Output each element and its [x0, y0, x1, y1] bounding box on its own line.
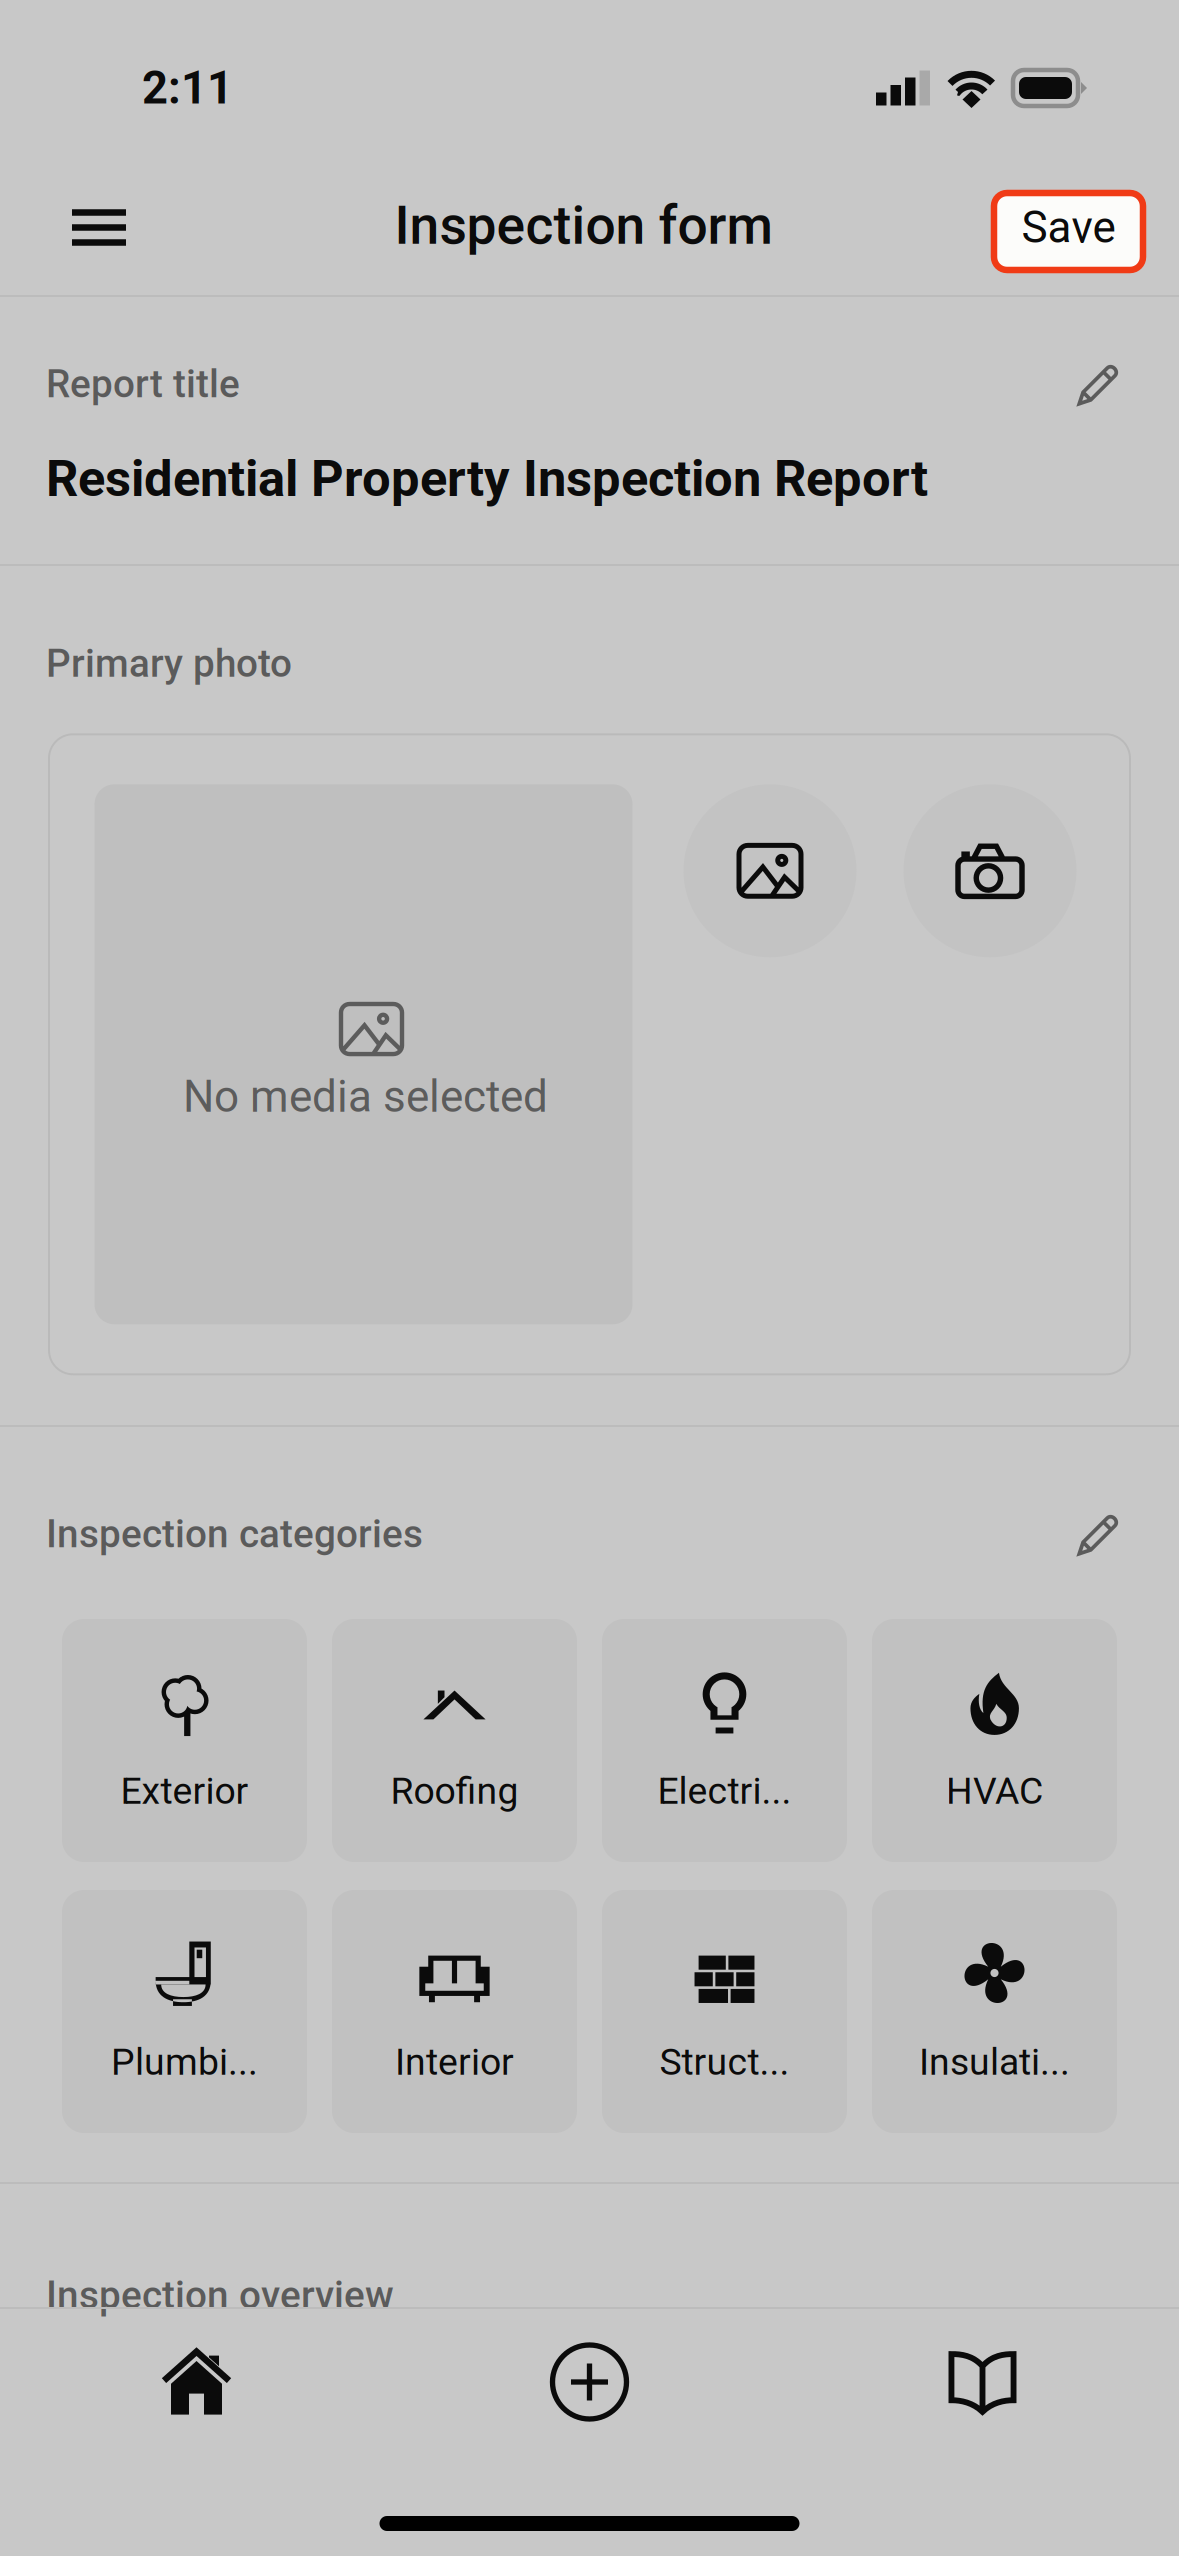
- staticText: Inspection categories: [46, 1511, 423, 1557]
- button[interactable]: Menu: [50, 169, 148, 266]
- button[interactable]: HVAC: [872, 1619, 1117, 1862]
- staticText: Report title: [46, 361, 240, 407]
- button[interactable]: Plumbi...: [62, 1890, 307, 2133]
- staticText: Primary photo: [46, 641, 292, 686]
- button[interactable]: Edit categories: [1076, 1511, 1133, 1557]
- staticText: Roofing: [390, 1769, 518, 1813]
- button[interactable]: Roofing: [332, 1619, 577, 1862]
- staticText: Residential Property Inspection Report: [46, 449, 928, 508]
- staticText: Struct...: [659, 2040, 789, 2084]
- staticText: No media selected: [183, 1071, 548, 1123]
- button[interactable]: Choose photo: [683, 784, 856, 957]
- staticText: Save: [1021, 202, 1115, 253]
- button[interactable]: Home: [0, 2331, 393, 2433]
- button[interactable]: Interior: [332, 1890, 577, 2133]
- button[interactable]: Struct...: [602, 1890, 847, 2133]
- button[interactable]: Edit report title: [1076, 361, 1133, 407]
- button[interactable]: Electri...: [602, 1619, 847, 1862]
- staticText: Inspection overview: [46, 2273, 394, 2318]
- staticText: Interior: [395, 2040, 514, 2084]
- staticText: Exterior: [120, 1769, 248, 1813]
- staticText: Inspection form: [394, 194, 772, 257]
- button[interactable]: Save: [991, 176, 1146, 259]
- button[interactable]: Library: [786, 2331, 1179, 2433]
- staticText: Electri...: [657, 1769, 791, 1813]
- button[interactable]: Add: [393, 2331, 786, 2433]
- button[interactable]: Exterior: [62, 1619, 307, 1862]
- staticText: HVAC: [946, 1769, 1043, 1813]
- staticText: 2:11: [142, 61, 233, 114]
- staticText: Plumbi...: [111, 2040, 258, 2084]
- staticText: Insulati...: [919, 2040, 1070, 2084]
- button[interactable]: Insulati...: [872, 1890, 1117, 2133]
- button[interactable]: Take photo: [903, 784, 1076, 957]
